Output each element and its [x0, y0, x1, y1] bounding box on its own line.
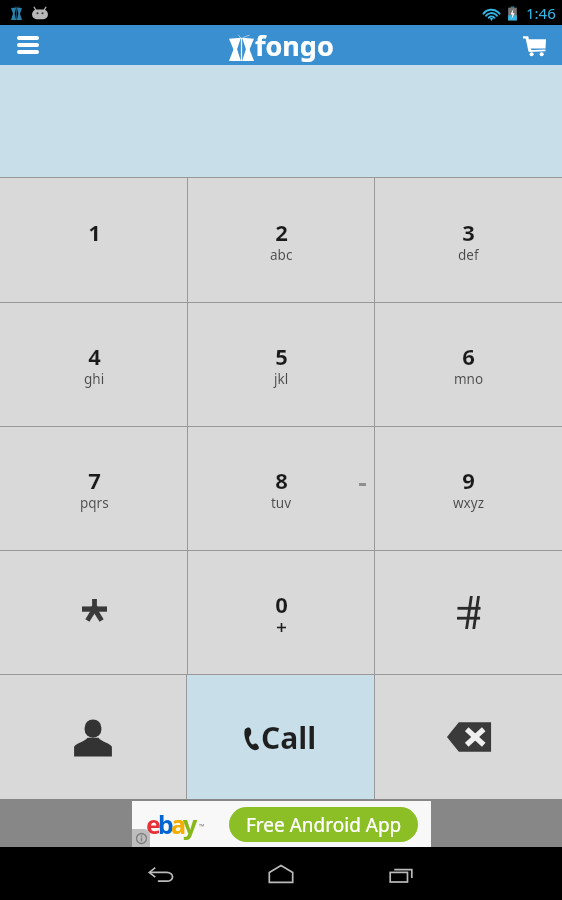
button[interactable]: 0 [188, 551, 375, 675]
staticText: 1:46 [526, 3, 556, 23]
staticText: 5 [275, 341, 288, 371]
staticText: wxyz [453, 494, 484, 512]
staticText: 7 [88, 465, 101, 495]
button[interactable] [375, 551, 562, 675]
button[interactable]: Home [241, 854, 321, 894]
staticText: tuv [271, 494, 292, 512]
staticText: fongo [255, 27, 334, 64]
button[interactable]: e [132, 801, 431, 847]
button[interactable] [0, 551, 188, 675]
staticText: y [183, 807, 198, 841]
button[interactable]: Contacts [0, 675, 186, 799]
staticText: 2 [275, 217, 288, 247]
button[interactable]: 2 [188, 178, 375, 303]
staticText: jkl [274, 370, 289, 388]
button[interactable]: 8 [188, 427, 375, 551]
button[interactable]: Backspace [375, 675, 562, 799]
button[interactable]: 5 [188, 303, 375, 427]
staticText: 6 [462, 341, 475, 371]
button[interactable]: 7 [0, 427, 188, 551]
button[interactable]: 4 [0, 303, 188, 427]
staticText: 3 [462, 217, 475, 247]
button[interactable]: Shopping cart [506, 25, 562, 65]
staticText: 0 [275, 589, 288, 619]
staticText: Free Android App [246, 812, 402, 838]
staticText: a [171, 807, 186, 841]
staticText: def [458, 246, 479, 264]
button[interactable]: 1 [0, 178, 188, 303]
button[interactable]: Call [187, 675, 374, 799]
staticText: abc [270, 246, 293, 264]
button[interactable]: 3 [375, 178, 562, 303]
staticText: 9 [462, 465, 475, 495]
button[interactable]: Back [121, 854, 201, 894]
staticText: b [158, 807, 174, 841]
staticText: e [146, 807, 161, 841]
button[interactable]: Menu [0, 25, 56, 65]
staticText: 1 [88, 217, 101, 247]
staticText: ™ [199, 822, 205, 832]
staticText: mno [454, 370, 484, 388]
staticText: 4 [88, 341, 101, 371]
button[interactable]: Recents [361, 854, 441, 894]
button[interactable]: 6 [375, 303, 562, 427]
staticText: 8 [275, 465, 288, 495]
staticText: Call [261, 717, 317, 758]
button[interactable]: 9 [375, 427, 562, 551]
staticText: ghi [84, 370, 105, 388]
staticText: pqrs [80, 494, 109, 512]
